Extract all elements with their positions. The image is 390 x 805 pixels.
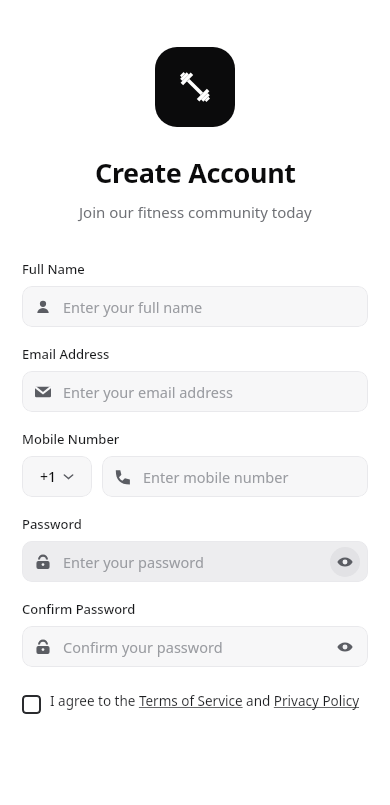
staticText: Create Account (95, 154, 296, 191)
staticText: Enter your full name (63, 297, 360, 317)
staticText: Join our fitness community today (79, 202, 312, 222)
staticText: +1 (40, 467, 57, 486)
button[interactable]: Enter your password (22, 541, 368, 582)
staticText: Enter your email address (63, 382, 360, 402)
staticText: Full Name (22, 260, 85, 278)
staticText: Enter your password (63, 552, 330, 572)
staticText: Enter mobile number (143, 467, 360, 487)
button[interactable]: Toggle password visibility (330, 547, 360, 577)
staticText: Confirm Password (22, 600, 136, 618)
button[interactable]: Confirm your password (22, 626, 368, 667)
staticText: Email Address (22, 345, 110, 363)
staticText: I agree to the Terms of Service and Priv… (50, 692, 360, 710)
other: App logo (155, 47, 235, 127)
button[interactable]: Enter your full name (22, 286, 368, 327)
button[interactable]: Agree to terms checkbox (22, 692, 368, 714)
other: Agree to terms checkbox (22, 695, 41, 714)
button[interactable]: Enter mobile number (102, 456, 368, 497)
button[interactable]: Enter your email address (22, 371, 368, 412)
button[interactable]: +1 (22, 456, 92, 497)
button[interactable]: Toggle password visibility (330, 632, 360, 662)
staticText: Mobile Number (22, 430, 120, 448)
staticText: Password (22, 515, 82, 533)
staticText: Confirm your password (63, 637, 330, 657)
